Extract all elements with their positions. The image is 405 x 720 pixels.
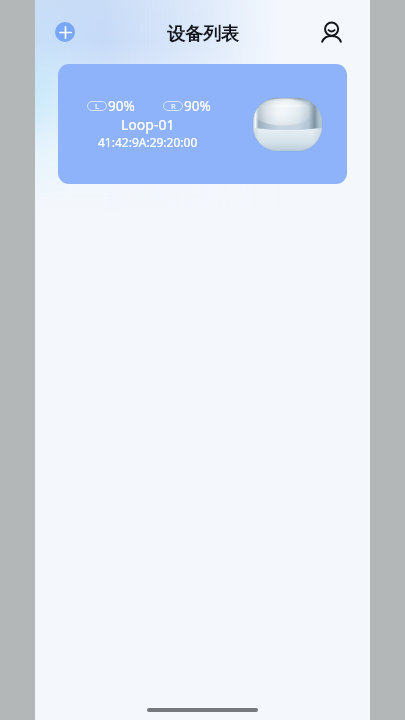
staticText: R — [171, 101, 176, 111]
staticText: 41:42:9A:29:20:00 — [98, 134, 198, 150]
staticText: 90% — [184, 97, 211, 115]
staticText: 90% — [108, 97, 135, 115]
staticText: L — [95, 101, 99, 111]
button[interactable]: Add device — [55, 22, 75, 42]
button[interactable]: Account — [320, 21, 342, 43]
button[interactable]: L — [58, 64, 347, 184]
staticText: 设备列表 — [167, 23, 239, 46]
staticText: Loop-01 — [121, 115, 175, 134]
